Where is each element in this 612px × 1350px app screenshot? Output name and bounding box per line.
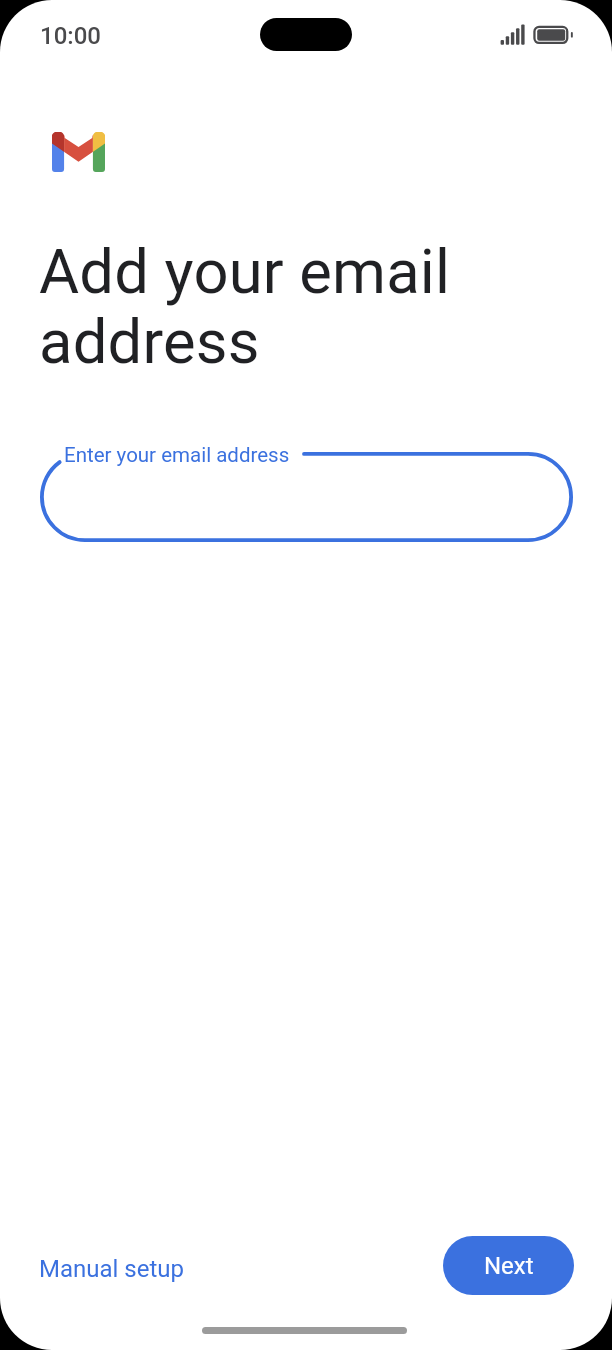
button[interactable]: Email address input: [40, 452, 573, 542]
staticText: Enter your email address: [64, 443, 290, 467]
staticText: Add your email address: [39, 236, 509, 378]
button[interactable]: Manual setup: [23, 1243, 201, 1295]
staticText: 10:00: [40, 22, 101, 50]
button[interactable]: Next: [443, 1236, 574, 1295]
staticText: Next: [484, 1252, 534, 1280]
staticText: Manual setup: [39, 1255, 185, 1283]
